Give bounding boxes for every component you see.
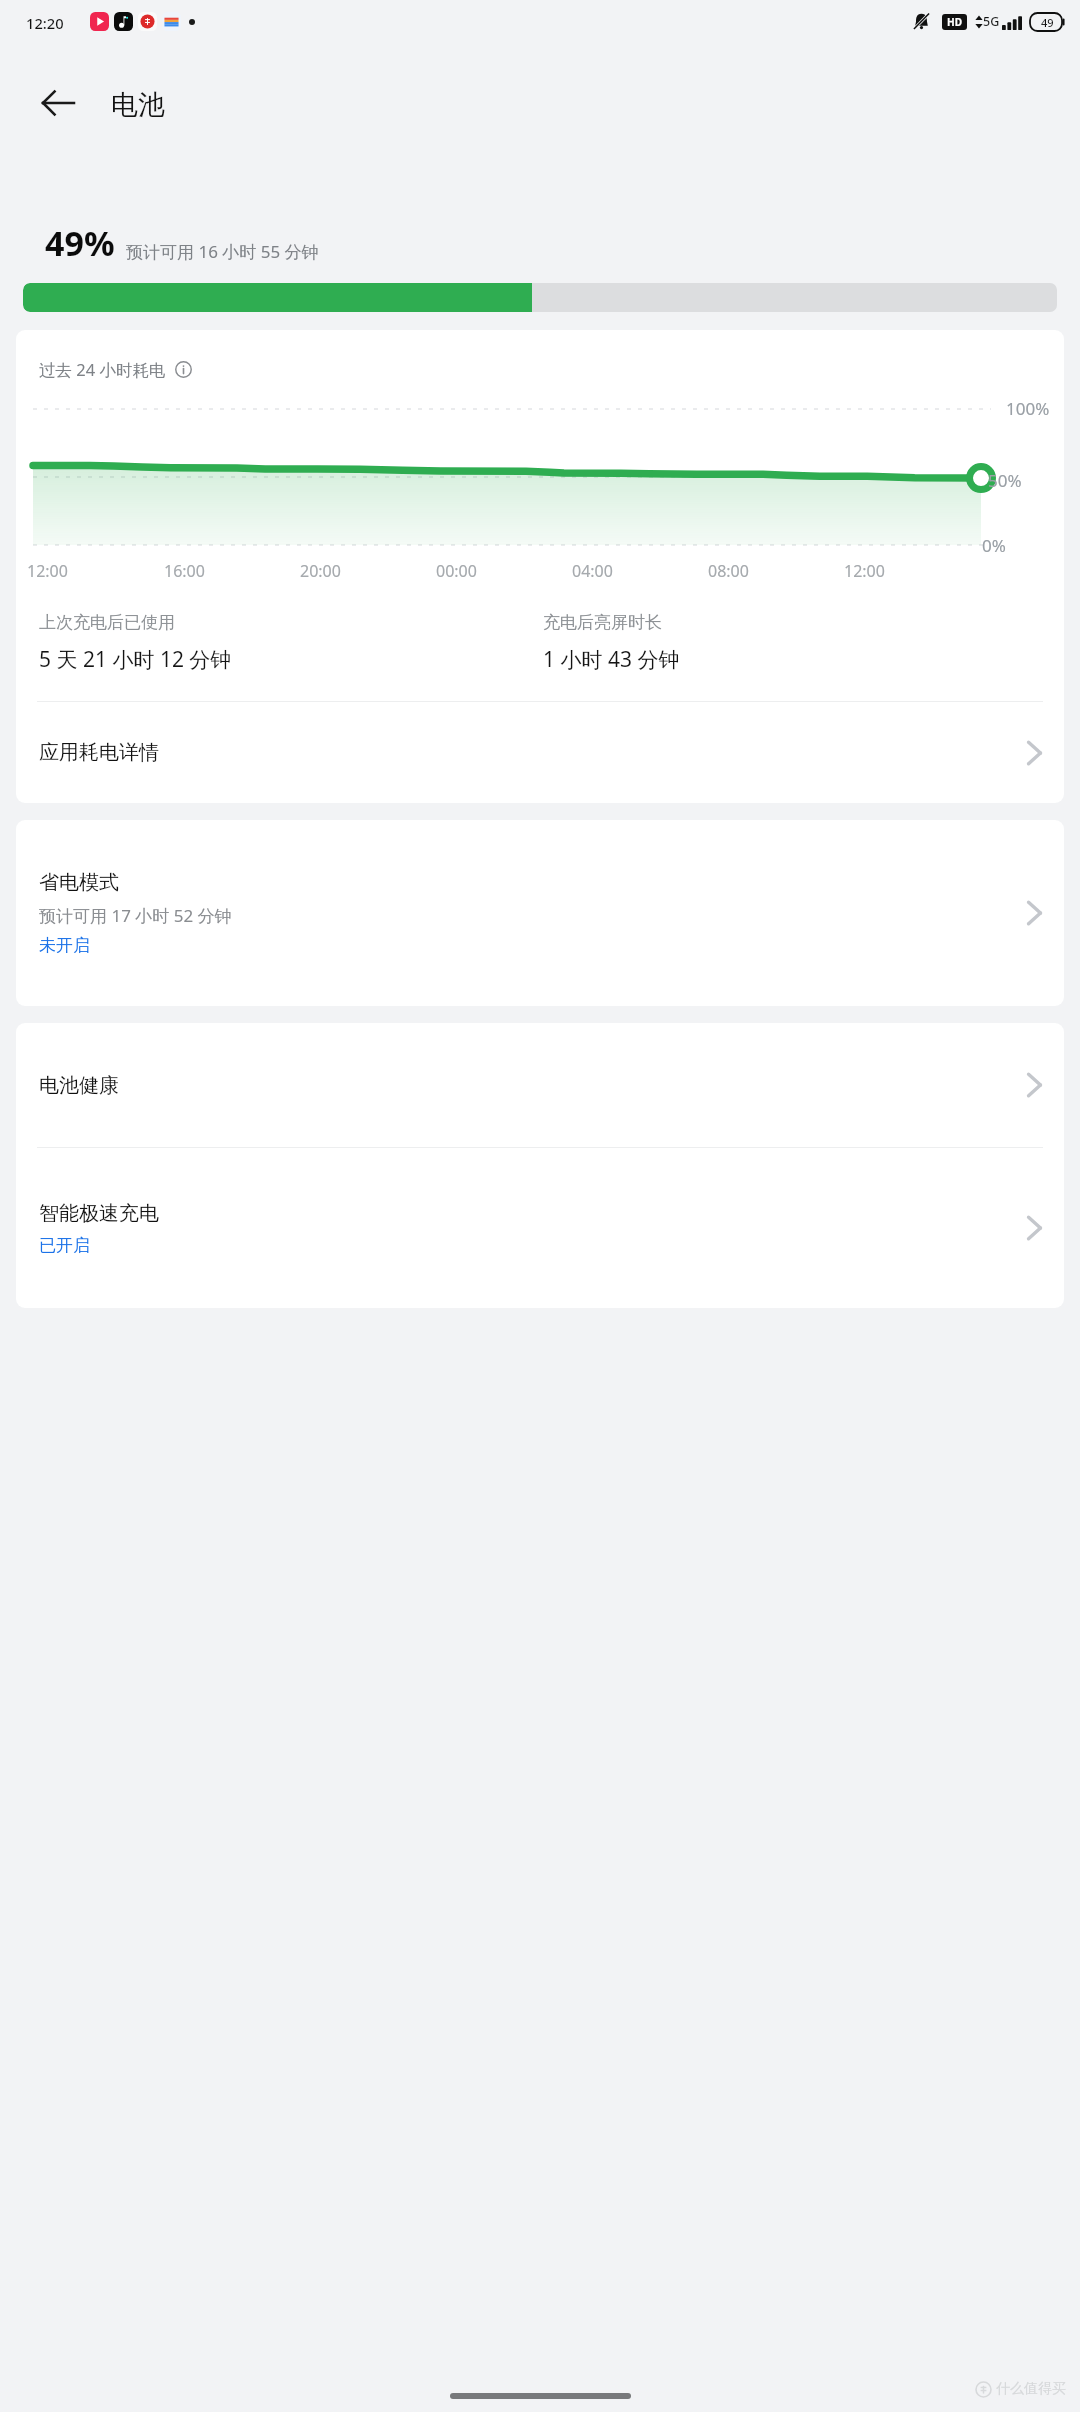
- staticText: 省电模式: [39, 870, 119, 895]
- staticText: 预计可用 17 小时 52 分钟: [39, 904, 232, 927]
- staticText: 电池: [111, 88, 165, 122]
- staticText: 49%: [45, 220, 115, 266]
- staticText: 上次充电后已使用: [39, 612, 175, 633]
- staticText: 什么值得买: [996, 2380, 1066, 2398]
- staticText: 应用耗电详情: [39, 740, 159, 765]
- staticText: 充电后亮屏时长: [543, 612, 662, 633]
- button[interactable]: 电池健康: [16, 1023, 1064, 1147]
- button[interactable]: 省电模式: [16, 820, 1064, 1006]
- staticText: 电池健康: [39, 1073, 119, 1098]
- button[interactable]: 应用耗电详情: [16, 702, 1064, 803]
- button[interactable]: 智能极速充电: [16, 1148, 1064, 1308]
- staticText: 12:00: [844, 560, 885, 582]
- staticText: 04:00: [572, 560, 613, 582]
- staticText: 过去 24 小时耗电: [39, 358, 166, 381]
- staticText: 5 天 21 小时 12 分钟: [39, 645, 232, 674]
- staticText: 12:20: [26, 13, 64, 33]
- staticText: 49: [1041, 15, 1054, 30]
- staticText: 100%: [1006, 397, 1050, 420]
- staticText: 5G: [983, 13, 1000, 30]
- button[interactable]: Back: [22, 67, 94, 139]
- staticText: HD: [947, 15, 962, 29]
- staticText: 智能极速充电: [39, 1201, 159, 1226]
- staticText: 00:00: [436, 560, 477, 582]
- staticText: 未开启: [39, 935, 90, 956]
- staticText: 1 小时 43 分钟: [543, 645, 680, 674]
- staticText: 预计可用 16 小时 55 分钟: [126, 240, 319, 263]
- staticText: 16:00: [164, 560, 205, 582]
- staticText: 08:00: [708, 560, 749, 582]
- staticText: 已开启: [39, 1235, 90, 1256]
- staticText: 0%: [982, 534, 1006, 557]
- staticText: 12:00: [27, 560, 68, 582]
- staticText: 20:00: [300, 560, 341, 582]
- staticText: 50%: [988, 469, 1022, 492]
